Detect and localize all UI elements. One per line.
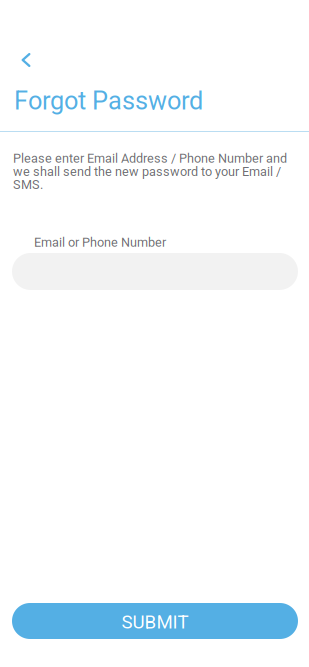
staticText: Forgot Password	[14, 86, 203, 116]
staticText: Please enter Email Address / Phone Numbe…	[13, 151, 287, 192]
button[interactable]: Back	[13, 47, 39, 73]
staticText: Email or Phone Number	[34, 235, 166, 250]
staticText: SUBMIT	[121, 611, 188, 633]
button[interactable]: SUBMIT	[12, 603, 298, 639]
